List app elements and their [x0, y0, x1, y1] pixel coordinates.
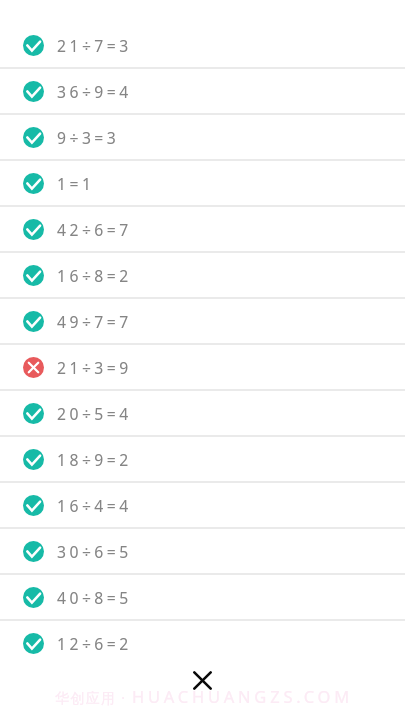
staticText: 9 ÷ 3 = 3 — [57, 127, 116, 148]
button[interactable]: 1 6 ÷ 8 = 2 — [0, 253, 405, 297]
staticText: 3 0 ÷ 6 = 5 — [57, 541, 128, 562]
button[interactable]: Close — [185, 663, 220, 698]
button[interactable]: 4 2 ÷ 6 = 7 — [0, 207, 405, 251]
button[interactable]: 4 0 ÷ 8 = 5 — [0, 575, 405, 619]
staticText: 1 6 ÷ 8 = 2 — [57, 265, 128, 286]
button[interactable]: 1 8 ÷ 9 = 2 — [0, 437, 405, 481]
button[interactable]: 2 0 ÷ 5 = 4 — [0, 391, 405, 435]
button[interactable]: 2 1 ÷ 3 = 9 — [0, 345, 405, 389]
button[interactable]: 1 = 1 — [0, 161, 405, 205]
staticText: 华创应用 · — [55, 688, 132, 707]
staticText: 2 1 ÷ 7 = 3 — [57, 35, 128, 56]
staticText: 2 1 ÷ 3 = 9 — [57, 357, 128, 378]
button[interactable]: 3 0 ÷ 6 = 5 — [0, 529, 405, 573]
staticText: 3 6 ÷ 9 = 4 — [57, 81, 128, 102]
staticText: 1 8 ÷ 9 = 2 — [57, 449, 128, 470]
button[interactable]: 9 ÷ 3 = 3 — [0, 115, 405, 159]
staticText: 1 6 ÷ 4 = 4 — [57, 495, 128, 516]
button[interactable]: 2 1 ÷ 7 = 3 — [0, 23, 405, 67]
button[interactable]: 1 6 ÷ 4 = 4 — [0, 483, 405, 527]
button[interactable]: 4 9 ÷ 7 = 7 — [0, 299, 405, 343]
staticText: 1 2 ÷ 6 = 2 — [57, 633, 128, 654]
staticText: 4 2 ÷ 6 = 7 — [57, 219, 128, 240]
staticText: 1 = 1 — [57, 173, 91, 194]
button[interactable]: 1 2 ÷ 6 = 2 — [0, 621, 405, 665]
staticText: 4 0 ÷ 8 = 5 — [57, 587, 128, 608]
staticText: HUACHUANGZS.COM — [132, 685, 354, 707]
button[interactable]: 3 6 ÷ 9 = 4 — [0, 69, 405, 113]
staticText: 2 0 ÷ 5 = 4 — [57, 403, 128, 424]
staticText: 4 9 ÷ 7 = 7 — [57, 311, 128, 332]
